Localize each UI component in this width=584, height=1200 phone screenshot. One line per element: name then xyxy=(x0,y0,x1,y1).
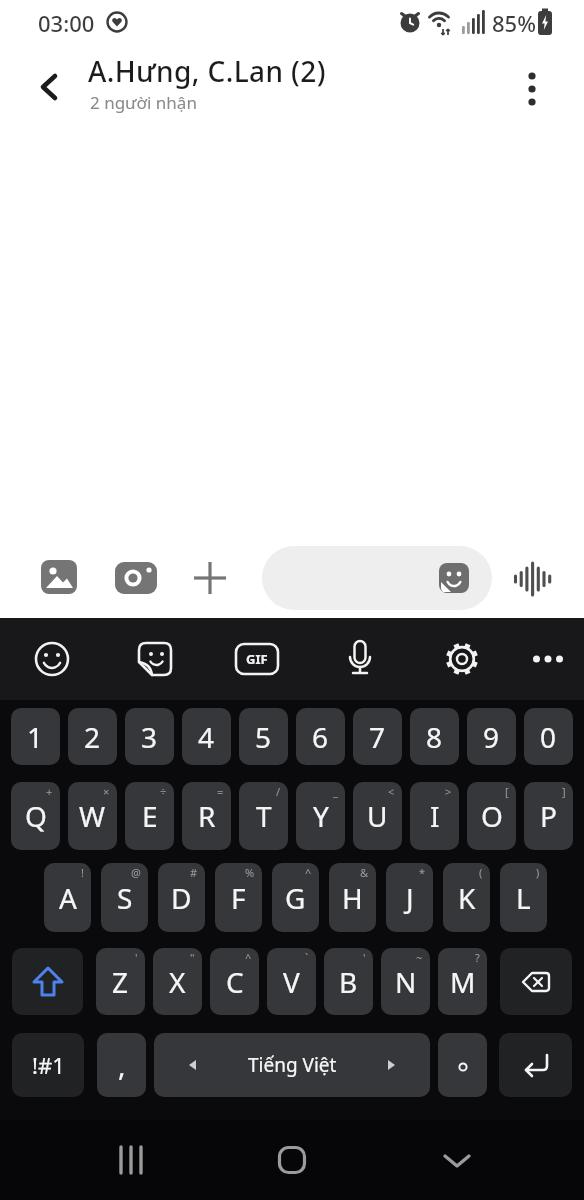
staticText: 7 xyxy=(369,718,386,756)
staticText: P xyxy=(540,797,557,835)
button[interactable] xyxy=(114,560,158,596)
button[interactable]: U xyxy=(353,782,402,850)
staticText: 9 xyxy=(483,718,500,756)
button[interactable] xyxy=(12,948,83,1015)
button[interactable]: 4 xyxy=(182,708,231,765)
staticText: @ xyxy=(131,865,141,880)
staticText: # xyxy=(190,865,198,880)
button[interactable]: F xyxy=(215,863,262,932)
button[interactable]: Y xyxy=(296,782,345,850)
staticText: ! xyxy=(81,865,84,880)
staticText: 4 xyxy=(198,718,215,756)
button[interactable]: P xyxy=(524,782,573,850)
staticText: 85% xyxy=(492,8,536,38)
staticText: J xyxy=(406,879,414,917)
staticText: S xyxy=(117,879,133,917)
button[interactable]: N xyxy=(381,948,430,1015)
staticText: X xyxy=(169,963,186,1001)
button[interactable]: K xyxy=(443,863,490,932)
button[interactable]: Tiếng Việt xyxy=(154,1033,430,1097)
button[interactable]: L xyxy=(500,863,547,932)
button[interactable]: T xyxy=(239,782,288,850)
staticText: & xyxy=(360,865,369,880)
staticText: U xyxy=(367,797,388,835)
button[interactable] xyxy=(499,1033,572,1097)
staticText: Y xyxy=(313,797,329,835)
button[interactable]: 1 xyxy=(11,708,60,765)
button[interactable]: 3 xyxy=(125,708,174,765)
button[interactable] xyxy=(27,65,71,109)
staticText: 03:00 xyxy=(38,8,95,38)
button[interactable]: 8 xyxy=(410,708,459,765)
button[interactable] xyxy=(524,635,572,683)
staticText: 0 xyxy=(540,718,557,756)
button[interactable]: R xyxy=(182,782,231,850)
button[interactable]: 0 xyxy=(524,708,573,765)
button[interactable]: Q xyxy=(11,782,60,850)
staticText: " xyxy=(190,950,195,965)
button[interactable] xyxy=(262,546,492,610)
button[interactable]: W xyxy=(68,782,117,850)
button[interactable]: V xyxy=(267,948,316,1015)
staticText: / xyxy=(276,784,281,799)
button[interactable] xyxy=(268,1136,316,1184)
button[interactable]: E xyxy=(125,782,174,850)
button[interactable]: 5 xyxy=(239,708,288,765)
staticText: L xyxy=(516,879,531,917)
staticText: B xyxy=(339,963,358,1001)
button[interactable]: J xyxy=(386,863,433,932)
button[interactable] xyxy=(336,635,384,683)
staticText: [ xyxy=(505,784,509,799)
staticText: A xyxy=(59,879,77,917)
staticText: 3 xyxy=(141,718,158,756)
button[interactable]: , xyxy=(97,1033,146,1097)
staticText: ~ xyxy=(416,950,423,965)
staticText: + xyxy=(46,784,53,799)
button[interactable]: S xyxy=(101,863,148,932)
button[interactable]: M xyxy=(438,948,487,1015)
staticText: , xyxy=(118,1046,126,1084)
button[interactable] xyxy=(131,635,179,683)
staticText: 1 xyxy=(27,718,44,756)
button[interactable]: I xyxy=(410,782,459,850)
button[interactable]: G xyxy=(272,863,319,932)
staticText: ? xyxy=(475,950,480,965)
staticText: * xyxy=(419,865,426,880)
button[interactable]: !#1 xyxy=(12,1033,84,1097)
staticText: GIF xyxy=(246,650,268,668)
button[interactable]: 2 xyxy=(68,708,117,765)
button[interactable]: 9 xyxy=(467,708,516,765)
staticText: 5 xyxy=(255,718,272,756)
button[interactable] xyxy=(438,635,486,683)
button[interactable] xyxy=(40,558,78,596)
button[interactable]: B xyxy=(324,948,373,1015)
button[interactable]: C xyxy=(210,948,259,1015)
staticText: !#1 xyxy=(32,1050,65,1080)
staticText: ( xyxy=(479,865,483,880)
button[interactable] xyxy=(28,635,76,683)
button[interactable]: D xyxy=(158,863,205,932)
button[interactable]: X xyxy=(153,948,202,1015)
staticText: Tiếng Việt xyxy=(248,1052,337,1078)
button[interactable]: H xyxy=(329,863,376,932)
button[interactable] xyxy=(512,558,554,600)
button[interactable] xyxy=(107,1136,155,1184)
button[interactable] xyxy=(438,1033,487,1097)
button[interactable]: 7 xyxy=(353,708,402,765)
staticText: T xyxy=(256,797,272,835)
button[interactable] xyxy=(192,560,228,596)
staticText: ' xyxy=(363,950,366,965)
staticText: 2 người nhận xyxy=(90,91,197,114)
staticText: 6 xyxy=(312,718,329,756)
button[interactable]: GIF xyxy=(233,635,281,683)
staticText: ^ xyxy=(245,950,252,965)
button[interactable] xyxy=(510,67,554,111)
button[interactable]: O xyxy=(467,782,516,850)
staticText: ^ xyxy=(305,865,312,880)
button[interactable]: A xyxy=(44,863,91,932)
button[interactable] xyxy=(433,1136,481,1184)
staticText: ÷ xyxy=(160,784,167,799)
button[interactable]: 6 xyxy=(296,708,345,765)
button[interactable]: Z xyxy=(96,948,145,1015)
button[interactable] xyxy=(500,948,572,1015)
